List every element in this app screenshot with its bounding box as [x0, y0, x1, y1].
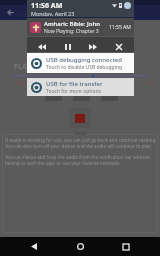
button[interactable]: Close [108, 37, 130, 52]
staticText: 11:55 AM [109, 24, 131, 31]
staticText: You can Pause and Stop the audio from th… [5, 154, 150, 166]
staticText: Touch to disable USB debugging [46, 64, 123, 71]
staticText: Now Playing: Chapter 3 [20, 12, 75, 19]
button[interactable]: Stop [69, 108, 91, 128]
button[interactable]: Back [3, 5, 17, 19]
button[interactable]: Rewind [31, 37, 53, 52]
staticText: PLAYING [14, 62, 43, 72]
staticText: 1:39 [142, 80, 152, 87]
button[interactable]: Home [68, 237, 92, 256]
button[interactable]: Pause [57, 37, 79, 52]
button[interactable]: USB debugging connected [27, 53, 134, 73]
staticText: If audio is working for you, you can jus… [5, 137, 156, 149]
button[interactable]: Account [124, 2, 131, 9]
staticText: Touch for more options [46, 88, 101, 95]
staticText: Monday, April 23 [31, 10, 75, 16]
staticText: Stop [74, 129, 86, 136]
button[interactable]: Recent apps [114, 237, 138, 256]
staticText: 0:00 [14, 80, 24, 87]
button[interactable]: USB for file transfer [27, 78, 134, 96]
staticText: USB for file transfer [46, 80, 103, 88]
button[interactable]: Back [22, 237, 46, 256]
staticText: Amharic Bible: John [44, 20, 100, 28]
staticText: 11:56 AM [31, 1, 63, 11]
staticText: USB debugging connected [46, 56, 122, 64]
button[interactable]: Fast forward [82, 37, 104, 52]
staticText: Now Playing: Chapter 3 [44, 28, 99, 35]
button[interactable]: Amharic Bible: John [27, 18, 134, 36]
